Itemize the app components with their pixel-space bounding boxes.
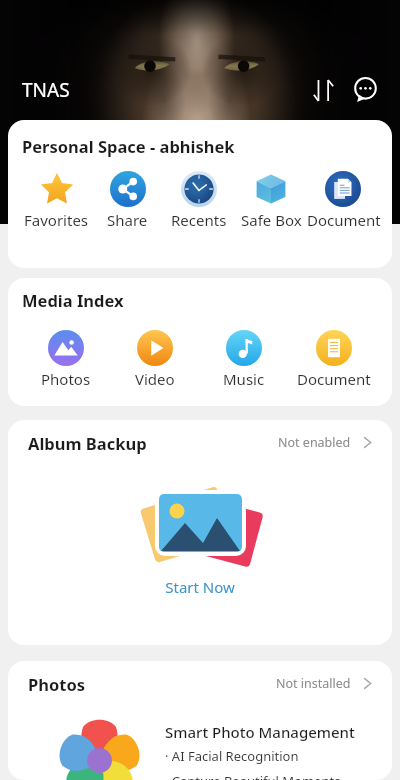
button[interactable]: Messages xyxy=(348,73,382,107)
button[interactable]: Recents xyxy=(163,171,235,230)
button[interactable]: Video xyxy=(110,330,199,389)
button[interactable]: Transfer xyxy=(306,73,340,107)
button[interactable]: Photos xyxy=(21,330,110,389)
staticText: Not enabled xyxy=(278,434,351,451)
staticText: TNAS xyxy=(22,77,70,103)
button[interactable]: Favorites xyxy=(21,171,92,230)
staticText: Media Index xyxy=(22,289,124,311)
staticText: Album Backup xyxy=(28,432,147,454)
staticText: Photos xyxy=(41,369,91,389)
staticText: Photos xyxy=(28,673,86,695)
button[interactable]: Share xyxy=(92,171,163,230)
button[interactable]: Album Backup xyxy=(8,420,392,465)
staticText: · AI Facial Recognition xyxy=(165,747,299,765)
button[interactable]: Start Now xyxy=(8,577,392,597)
staticText: Not installed xyxy=(276,675,351,692)
button[interactable]: Document xyxy=(307,171,379,230)
staticText: Personal Space - abhishek xyxy=(22,135,235,157)
button[interactable]: Document xyxy=(289,330,379,389)
staticText: Video xyxy=(135,369,175,389)
staticText: Share xyxy=(107,210,148,230)
staticText: Document xyxy=(307,210,379,230)
button[interactable]: Photos xyxy=(8,661,392,706)
staticText: Favorites xyxy=(24,210,89,230)
button[interactable]: Music xyxy=(199,330,289,389)
button[interactable]: Safe Box xyxy=(235,171,307,230)
staticText: Music xyxy=(223,369,265,389)
staticText: Smart Photo Management xyxy=(165,722,355,742)
staticText: · Capture Beautiful Moments xyxy=(165,772,341,780)
staticText: Safe Box xyxy=(241,210,302,230)
staticText: Document xyxy=(297,369,371,389)
staticText: Recents xyxy=(171,210,227,230)
